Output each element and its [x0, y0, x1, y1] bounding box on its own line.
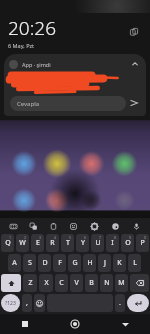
staticText: X	[44, 278, 49, 288]
staticText: 0	[144, 235, 147, 240]
staticText: 6	[84, 235, 87, 240]
staticText: B	[89, 278, 94, 288]
staticText: 6 May, Pzt	[8, 42, 35, 49]
staticText: 20:26	[8, 15, 57, 41]
button[interactable]: M	[115, 274, 128, 292]
staticText: Q	[5, 238, 11, 248]
button[interactable]: A	[8, 254, 21, 272]
staticText: E	[36, 238, 40, 248]
staticText: D	[42, 258, 48, 268]
button[interactable]: Gönder	[127, 294, 149, 312]
button[interactable]: J	[98, 254, 111, 272]
staticText: H	[87, 258, 93, 268]
button[interactable]: Ayarlar	[84, 218, 105, 234]
button[interactable]: C	[55, 274, 68, 292]
button[interactable]: ?123	[1, 294, 20, 312]
button[interactable]: Ayarlar	[126, 24, 142, 40]
button[interactable]: App · şimdi	[4, 54, 146, 116]
button[interactable]: G	[68, 254, 81, 272]
button[interactable]: P	[136, 234, 149, 252]
staticText: C	[59, 278, 64, 288]
button[interactable]: D	[38, 254, 51, 272]
staticText: ,	[26, 298, 28, 308]
button[interactable]: X	[39, 274, 53, 292]
button[interactable]: W	[16, 234, 29, 252]
staticText: R	[50, 238, 55, 248]
button[interactable]: Son kullanılanlar	[0, 314, 50, 334]
button[interactable]: Q	[1, 234, 14, 252]
button[interactable]: K	[113, 254, 126, 272]
button[interactable]: Pano	[43, 218, 63, 234]
staticText: Y	[81, 238, 85, 248]
staticText: W	[19, 238, 26, 248]
staticText: App · şimdi	[22, 61, 129, 68]
staticText: U	[95, 238, 101, 248]
staticText: 3	[39, 235, 42, 240]
button[interactable]: I	[106, 234, 119, 252]
staticText: Z	[28, 278, 33, 288]
staticText: 4	[54, 235, 57, 240]
button[interactable]: B	[85, 274, 98, 292]
staticText: I	[111, 238, 114, 248]
button[interactable]: Geri	[100, 314, 150, 334]
staticText: V	[74, 278, 79, 288]
button[interactable]: Sesle yaz	[126, 218, 147, 234]
button[interactable]: N	[100, 274, 113, 292]
staticText: K	[117, 258, 122, 268]
staticText: A	[12, 258, 17, 268]
button[interactable]: H	[83, 254, 96, 272]
staticText: S	[28, 258, 32, 268]
button[interactable]: Çeviri	[23, 218, 43, 234]
button[interactable]: Shift	[1, 274, 21, 292]
staticText: N	[104, 278, 110, 288]
button[interactable]: V	[70, 274, 83, 292]
button[interactable]: Z	[23, 274, 37, 292]
button[interactable]: O	[121, 234, 134, 252]
staticText: T	[66, 238, 70, 248]
staticText: 8	[114, 235, 117, 240]
button[interactable]: L	[128, 254, 141, 272]
button[interactable]: S	[23, 254, 36, 272]
button[interactable]: R	[46, 234, 59, 252]
button[interactable]: Ana ekran	[50, 314, 100, 334]
staticText: ?123	[5, 300, 16, 307]
staticText: G	[72, 258, 78, 268]
staticText: 9	[129, 235, 132, 240]
button[interactable]: Nokta	[115, 294, 125, 312]
button[interactable]: Y	[76, 234, 89, 252]
staticText: O	[125, 238, 131, 248]
staticText: P	[140, 238, 145, 248]
staticText: F	[58, 258, 62, 268]
button[interactable]: F	[53, 254, 66, 272]
staticText: Cevapla	[17, 100, 40, 108]
button[interactable]: Gönder	[126, 95, 142, 111]
staticText: 7	[99, 235, 102, 240]
button[interactable]: Daralt	[129, 58, 141, 70]
staticText: M	[118, 278, 125, 288]
button[interactable]: U	[91, 234, 104, 252]
staticText: J	[104, 258, 106, 268]
button[interactable]: Klavye	[3, 218, 23, 234]
button[interactable]: Tema	[105, 218, 126, 234]
button[interactable]: Cevapla	[10, 96, 126, 111]
staticText: 1	[9, 235, 12, 240]
staticText: .	[119, 298, 121, 308]
button[interactable]: Çıkartma	[63, 218, 84, 234]
staticText: 5	[69, 235, 72, 240]
button[interactable]: T	[61, 234, 74, 252]
button[interactable]: Emoji	[34, 294, 45, 312]
button[interactable]: Geri sil	[130, 274, 149, 292]
button[interactable]: Virgül	[22, 294, 32, 312]
staticText: 2	[24, 235, 27, 240]
button[interactable]: E	[31, 234, 44, 252]
staticText: L	[133, 258, 137, 268]
